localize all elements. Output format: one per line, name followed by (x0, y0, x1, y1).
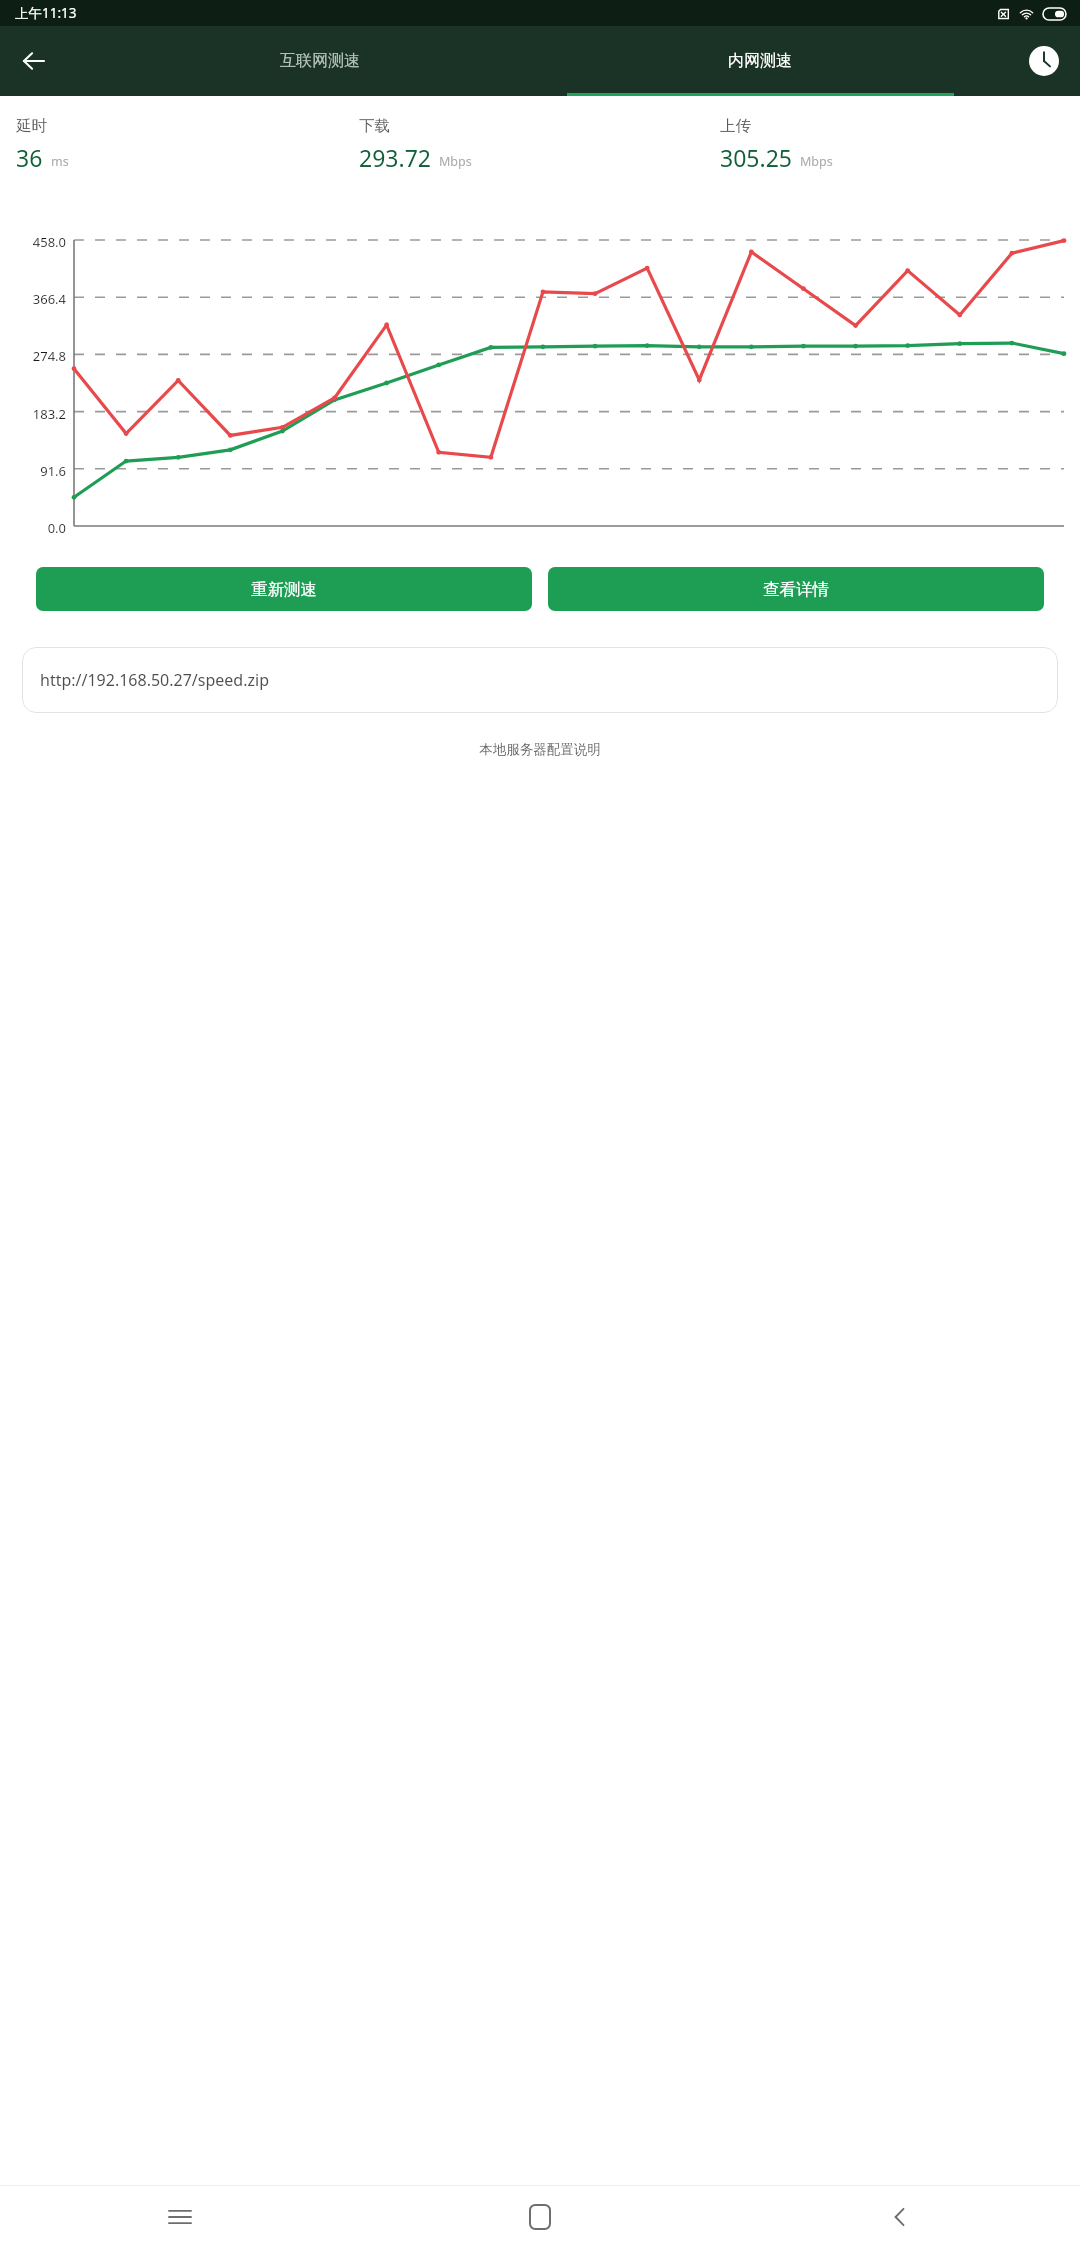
staticText: 366.4 (0, 290, 66, 304)
staticText: Mbps (439, 153, 472, 170)
staticText: 91.6 (0, 462, 66, 476)
button[interactable]: Menu (0, 2186, 360, 2248)
button[interactable]: 互联网测速 (100, 26, 540, 96)
button[interactable]: Home (360, 2186, 720, 2248)
staticText: 305.25 (720, 142, 792, 173)
staticText: 458.0 (0, 233, 66, 247)
button[interactable]: 内网测速 (540, 26, 980, 96)
button[interactable]: History (1018, 35, 1070, 87)
button[interactable]: 本地服务器配置说明 (0, 741, 1080, 758)
staticText: Mbps (800, 153, 833, 170)
staticText: 36 (16, 142, 43, 173)
staticText: http://192.168.50.27/speed.zip (40, 669, 269, 691)
staticText: 293.72 (359, 142, 431, 173)
staticText: 重新测速 (251, 579, 317, 600)
button[interactable]: http://192.168.50.27/speed.zip (22, 647, 1058, 713)
button[interactable]: 查看详情 (548, 567, 1044, 611)
staticText: 下载 (359, 116, 390, 136)
staticText: 0.0 (0, 519, 66, 533)
button[interactable]: Back (8, 35, 60, 87)
staticText: 查看详情 (763, 579, 829, 600)
staticText: ms (51, 153, 69, 170)
staticText: 上传 (720, 116, 751, 136)
staticText: 274.8 (0, 347, 66, 361)
staticText: 183.2 (0, 405, 66, 419)
button[interactable]: 重新测速 (36, 567, 532, 611)
staticText: 内网测速 (728, 51, 792, 71)
staticText: 互联网测速 (280, 51, 360, 71)
staticText: 延时 (16, 116, 47, 136)
staticText: 上午11:13 (15, 4, 77, 22)
button[interactable]: Back (720, 2186, 1080, 2248)
